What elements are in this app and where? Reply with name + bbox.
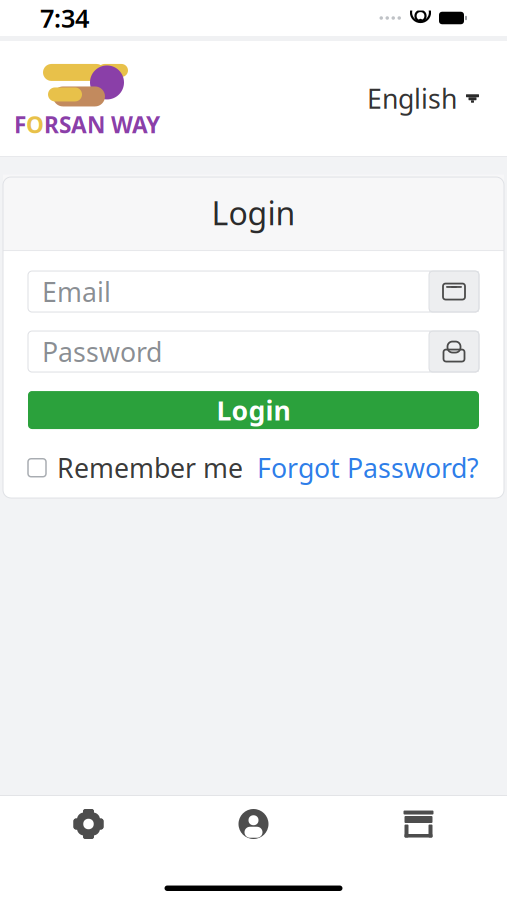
staticText: Forgot Password? [257,450,479,485]
staticText: F [14,109,26,139]
staticText: Email [42,274,111,309]
button[interactable]: English [361,73,485,124]
staticText: English [367,81,457,116]
staticText: Password [42,334,162,369]
staticText: Login [216,392,290,428]
button[interactable]: Remember me [28,445,243,490]
button[interactable]: Forgot Password? [257,445,479,490]
staticText: 7:34 [40,1,89,35]
button[interactable]: Store [336,796,501,852]
staticText: Login [211,191,295,234]
button[interactable]: Account [171,796,336,852]
staticText: Remember me [57,450,243,485]
button[interactable]: Login [28,391,479,429]
button[interactable]: Settings [6,796,171,852]
staticText: RSAN WAY [44,109,160,139]
staticText: O [26,109,44,139]
